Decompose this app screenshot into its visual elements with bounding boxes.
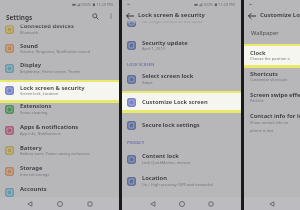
staticText: Apps & notifications bbox=[20, 123, 79, 131]
button[interactable] bbox=[0, 141, 119, 162]
button[interactable] bbox=[244, 110, 300, 138]
button[interactable]: Back bbox=[268, 198, 276, 209]
staticText: Battery saver, Power saving exclusions bbox=[20, 151, 90, 156]
staticText: Content lock bbox=[142, 152, 179, 160]
staticText: LOCK SCREEN bbox=[127, 62, 155, 68]
button[interactable]: Search bbox=[90, 11, 101, 22]
button[interactable] bbox=[244, 24, 300, 44]
staticText: 11:29 PM bbox=[96, 2, 113, 7]
staticText: April 1, 2019 bbox=[142, 46, 165, 51]
button[interactable]: Back bbox=[147, 198, 158, 209]
staticText: Internal storage bbox=[20, 172, 50, 177]
staticText: Security update bbox=[142, 39, 188, 47]
button[interactable] bbox=[122, 69, 241, 91]
staticText: No Google account on this device bbox=[142, 19, 203, 24]
button[interactable] bbox=[122, 113, 241, 134]
staticText: Shortcuts bbox=[250, 70, 278, 78]
button[interactable] bbox=[244, 68, 300, 89]
staticText: Customize Loc bbox=[260, 11, 300, 19]
button[interactable] bbox=[0, 58, 119, 78]
staticText: Extensions bbox=[20, 102, 52, 110]
button[interactable]: Navigate up bbox=[125, 11, 135, 21]
staticText: PRIVACY bbox=[127, 140, 145, 146]
staticText: Customize Lock screen bbox=[142, 98, 208, 106]
button[interactable] bbox=[122, 170, 241, 192]
staticText: Customize shortcuts bbox=[250, 77, 288, 82]
button[interactable]: Recent apps bbox=[205, 198, 216, 209]
button[interactable]: Navigate up bbox=[247, 11, 257, 21]
button[interactable] bbox=[0, 103, 119, 121]
staticText: Accounts bbox=[20, 185, 47, 193]
staticText: Bluetooth bbox=[20, 30, 39, 35]
staticText: 100% bbox=[81, 2, 91, 7]
button[interactable] bbox=[0, 182, 119, 197]
staticText: Choose the position o bbox=[250, 56, 290, 61]
staticText: Screen swipe effe bbox=[250, 91, 300, 99]
staticText: Storage bbox=[20, 164, 43, 172]
button[interactable]: Home bbox=[176, 198, 187, 209]
staticText: Swipe bbox=[142, 80, 153, 85]
button[interactable] bbox=[244, 89, 300, 110]
staticText: Connected devices bbox=[20, 22, 74, 30]
staticText: Secure lock settings bbox=[142, 121, 200, 129]
staticText: Wallpaper bbox=[251, 29, 279, 37]
staticText: Lock QuickMemo+ memos bbox=[142, 160, 191, 165]
staticText: Clock bbox=[250, 49, 266, 57]
staticText: Lock screen & security bbox=[138, 11, 205, 19]
staticText: Sound bbox=[20, 42, 39, 50]
staticText: Location bbox=[142, 174, 167, 182]
button[interactable] bbox=[244, 44, 300, 68]
staticText: Lock screen & security bbox=[20, 84, 85, 92]
staticText: Particle bbox=[250, 98, 264, 103]
button[interactable]: Home bbox=[54, 198, 65, 209]
button[interactable] bbox=[122, 148, 241, 170]
staticText: Contact info for lo bbox=[250, 112, 300, 120]
staticText: phone is lost bbox=[250, 128, 274, 133]
staticText: Display bbox=[20, 61, 42, 69]
button[interactable] bbox=[0, 80, 119, 103]
staticText: Smart cleaning bbox=[20, 110, 48, 115]
staticText: 11:29 PM bbox=[218, 2, 235, 7]
staticText: Select screen lock bbox=[142, 72, 194, 80]
button[interactable]: More options bbox=[106, 11, 116, 21]
staticText: Settings bbox=[6, 13, 33, 22]
button[interactable]: Back bbox=[24, 198, 35, 209]
staticText: Battery bbox=[20, 144, 42, 152]
button[interactable] bbox=[0, 161, 119, 182]
staticText: On / High accuracy (GPS and networks) bbox=[142, 182, 214, 187]
button[interactable]: Recent apps bbox=[84, 198, 95, 209]
button[interactable] bbox=[0, 121, 119, 141]
staticText: App info, Notifications bbox=[20, 131, 61, 136]
staticText: Brightness, Home screen, Theme bbox=[20, 69, 81, 74]
button[interactable] bbox=[122, 34, 241, 56]
button[interactable] bbox=[122, 91, 241, 113]
staticText: Show contact info on bbox=[250, 120, 289, 125]
staticText: Screen lock, Location bbox=[20, 91, 59, 96]
staticText: 100% bbox=[203, 2, 213, 7]
button[interactable] bbox=[0, 39, 119, 58]
staticText: Volume, Ringtones, Notification sound bbox=[20, 49, 91, 54]
button[interactable] bbox=[0, 20, 119, 39]
